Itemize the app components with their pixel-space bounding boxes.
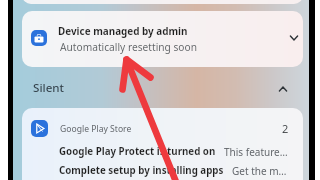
staticText: 2 [282,121,289,136]
staticText: Silent [33,80,65,96]
staticText: Google Play Store [60,123,132,135]
button[interactable]: Silent [13,76,309,98]
staticText: Get the mo… [232,164,291,178]
staticText: This feature… [224,145,291,159]
staticText: Device managed by admin [58,24,188,37]
button[interactable]: Google Play Protect is turned on [22,142,303,161]
button[interactable]: Google Play Store [22,108,303,142]
button[interactable]: Expand notification [286,30,302,46]
button[interactable]: Device managed by admin [22,11,303,67]
staticText: Automatically resetting soon [60,40,197,54]
staticText: Complete setup by installing apps [59,164,224,177]
staticText: Google Play Protect is turned on [59,145,216,158]
button[interactable]: Complete setup by installing apps [22,161,303,180]
other: Collapse silent section [275,81,291,97]
